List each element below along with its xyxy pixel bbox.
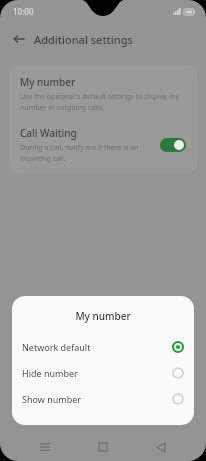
button[interactable]: Hide number: [12, 360, 194, 386]
staticText: Use the operator's default settings to d…: [20, 92, 186, 112]
staticText: During a call, notify me if there is an …: [20, 143, 154, 163]
button[interactable]: Back: [148, 434, 174, 460]
button[interactable]: Call Waiting: [9, 121, 197, 173]
staticText: Show number: [22, 393, 172, 405]
button[interactable]: Menu: [32, 434, 58, 460]
button[interactable]: Network default: [12, 334, 194, 360]
staticText: Hide number: [22, 367, 172, 379]
staticText: 10:00: [13, 6, 34, 17]
button[interactable]: Back: [8, 28, 30, 50]
button[interactable]: Home: [90, 434, 116, 460]
staticText: Call Waiting: [20, 126, 77, 140]
button[interactable]: My number: [9, 65, 197, 121]
staticText: Additional settings: [34, 32, 133, 47]
button[interactable]: Show number: [12, 386, 194, 412]
staticText: My number: [20, 75, 76, 89]
staticText: Network default: [22, 341, 172, 353]
staticText: My number: [12, 309, 194, 323]
